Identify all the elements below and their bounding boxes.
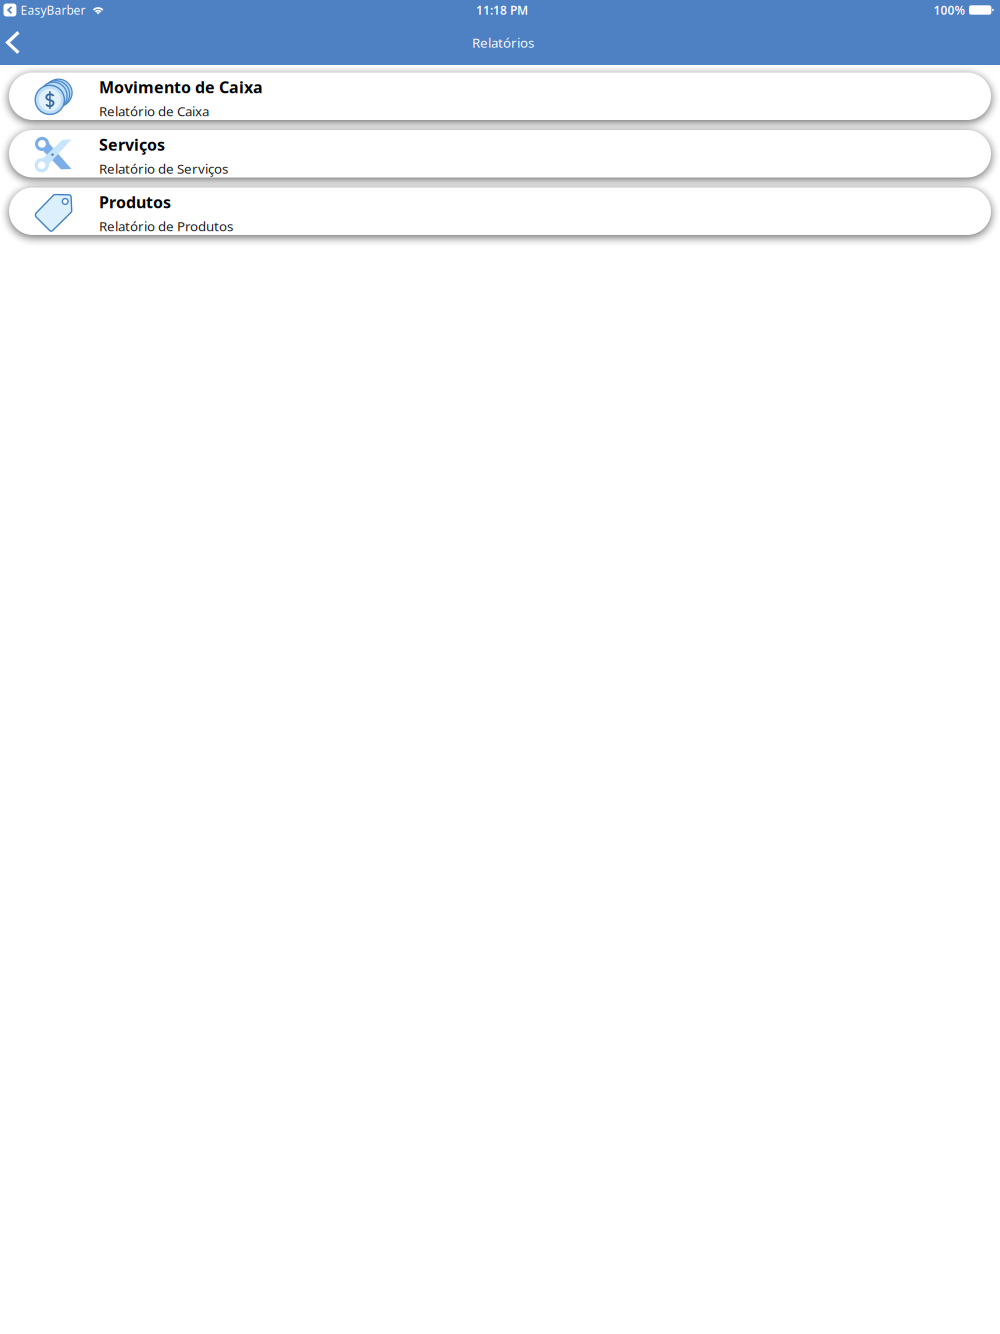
button[interactable]: Produtos <box>9 187 991 235</box>
button[interactable]: Serviços <box>9 130 991 177</box>
staticText: Relatório de Caixa <box>99 102 209 120</box>
staticText: EasyBarber <box>21 2 86 18</box>
staticText: Relatórios <box>472 34 534 51</box>
staticText: 100% <box>933 2 965 18</box>
button[interactable]: Movimento de Caixa <box>9 72 991 120</box>
button[interactable]: Back <box>0 20 30 65</box>
staticText: Relatório de Serviços <box>99 160 228 177</box>
staticText: Serviços <box>99 134 165 155</box>
staticText: Relatório de Produtos <box>99 217 233 235</box>
staticText: Movimento de Caixa <box>99 76 263 98</box>
staticText: 11:18 PM <box>476 2 528 18</box>
staticText: Produtos <box>99 191 171 213</box>
